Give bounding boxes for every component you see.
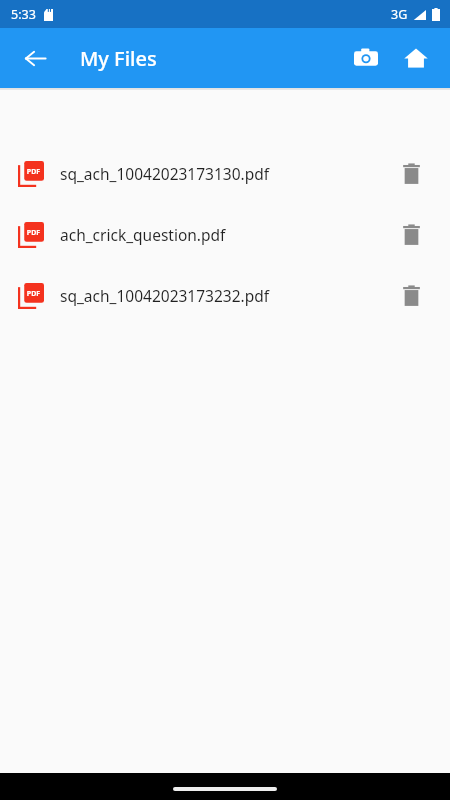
staticText: PDF xyxy=(24,167,43,177)
staticText: PDF xyxy=(24,228,43,238)
staticText: My Files xyxy=(80,45,157,72)
button[interactable]: Delete sq_ach_10042023173232.pdf xyxy=(389,274,433,318)
button[interactable]: Home xyxy=(394,36,438,80)
button[interactable]: Camera xyxy=(344,36,388,80)
staticText: PDF xyxy=(24,289,43,299)
staticText: 5:33 xyxy=(11,6,36,23)
staticText: sq_ach_10042023173232.pdf xyxy=(60,285,389,306)
button[interactable]: PDF xyxy=(0,204,450,265)
staticText: sq_ach_10042023173130.pdf xyxy=(60,163,389,184)
staticText: 3G xyxy=(391,6,408,23)
button[interactable]: Back xyxy=(13,36,57,80)
button[interactable]: Delete sq_ach_10042023173130.pdf xyxy=(389,152,433,196)
button[interactable]: PDF xyxy=(0,265,450,326)
button[interactable]: Delete ach_crick_question.pdf xyxy=(389,213,433,257)
button[interactable]: PDF xyxy=(0,143,450,204)
staticText: ach_crick_question.pdf xyxy=(60,224,389,245)
